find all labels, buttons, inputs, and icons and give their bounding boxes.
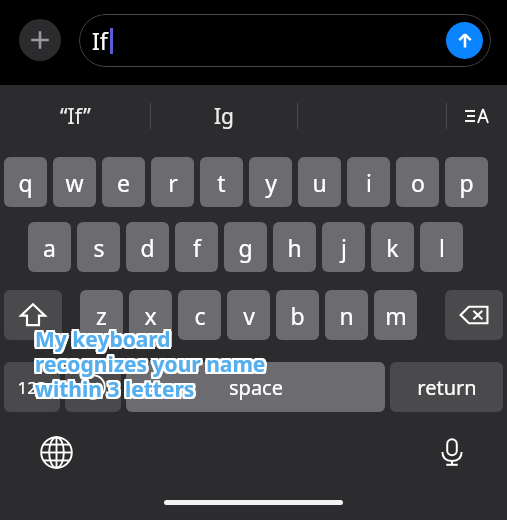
button[interactable]: Dictate (430, 430, 474, 474)
button[interactable]: h (273, 222, 316, 272)
staticText: p (459, 167, 474, 198)
button[interactable]: k (371, 222, 414, 272)
button[interactable]: Send (446, 22, 483, 59)
staticText: k (386, 232, 399, 263)
staticText: o (411, 167, 425, 198)
staticText: If (92, 25, 108, 56)
staticText: h (287, 232, 302, 263)
button[interactable]: Ig (151, 85, 297, 147)
staticText: y (265, 167, 277, 198)
staticText: n (339, 300, 354, 331)
staticText: u (312, 167, 327, 198)
button[interactable]: Emoji (65, 362, 121, 412)
button[interactable]: m (374, 290, 417, 340)
button[interactable]: If (79, 14, 491, 67)
button[interactable]: j (322, 222, 365, 272)
staticText: space (229, 374, 283, 401)
button[interactable]: Text formatting (447, 85, 507, 147)
button[interactable]: d (126, 222, 169, 272)
button[interactable]: a (28, 222, 71, 272)
staticText: g (238, 232, 253, 263)
button[interactable]: q (4, 157, 47, 207)
button[interactable]: space (126, 362, 385, 412)
staticText: “If” (60, 102, 91, 131)
staticText: d (140, 232, 155, 263)
button[interactable]: b (276, 290, 319, 340)
staticText: f (193, 232, 201, 263)
button[interactable]: l (420, 222, 463, 272)
button[interactable]: v (227, 290, 270, 340)
staticText: b (290, 300, 305, 331)
button[interactable]: f (175, 222, 218, 272)
button[interactable]: Shift (4, 290, 62, 340)
button[interactable]: w (53, 157, 96, 207)
staticText: z (96, 300, 107, 331)
button[interactable]: u (298, 157, 341, 207)
button[interactable]: “If” (0, 85, 150, 147)
staticText: 123 (17, 376, 47, 399)
staticText: j (341, 232, 347, 263)
button[interactable]: c (178, 290, 221, 340)
staticText: w (65, 167, 84, 198)
button[interactable]: x (129, 290, 172, 340)
staticText: a (43, 232, 56, 263)
staticText: q (18, 167, 33, 198)
button[interactable]: y (249, 157, 292, 207)
button[interactable]: z (80, 290, 123, 340)
button[interactable]: t (200, 157, 243, 207)
button[interactable]: s (77, 222, 120, 272)
button[interactable]: g (224, 222, 267, 272)
button[interactable]: n (325, 290, 368, 340)
staticText: i (366, 167, 372, 198)
staticText: v (243, 300, 255, 331)
staticText: r (168, 167, 178, 198)
staticText: m (385, 300, 407, 331)
staticText: t (217, 167, 226, 198)
button[interactable]: Backspace (445, 290, 503, 340)
button[interactable]: i (347, 157, 390, 207)
button[interactable]: r (151, 157, 194, 207)
staticText: Ig (214, 102, 235, 131)
staticText: s (93, 232, 105, 263)
staticText: x (144, 300, 157, 331)
button[interactable]: o (396, 157, 439, 207)
button[interactable]: Add attachment (19, 19, 61, 61)
staticText: return (417, 374, 477, 401)
staticText: l (439, 232, 445, 263)
button[interactable]: Change keyboard language (34, 430, 78, 474)
button[interactable]: return (390, 362, 503, 412)
staticText: e (117, 167, 130, 198)
button[interactable]: p (445, 157, 488, 207)
button[interactable]: 123 (4, 362, 60, 412)
staticText: c (194, 300, 206, 331)
button[interactable]: e (102, 157, 145, 207)
